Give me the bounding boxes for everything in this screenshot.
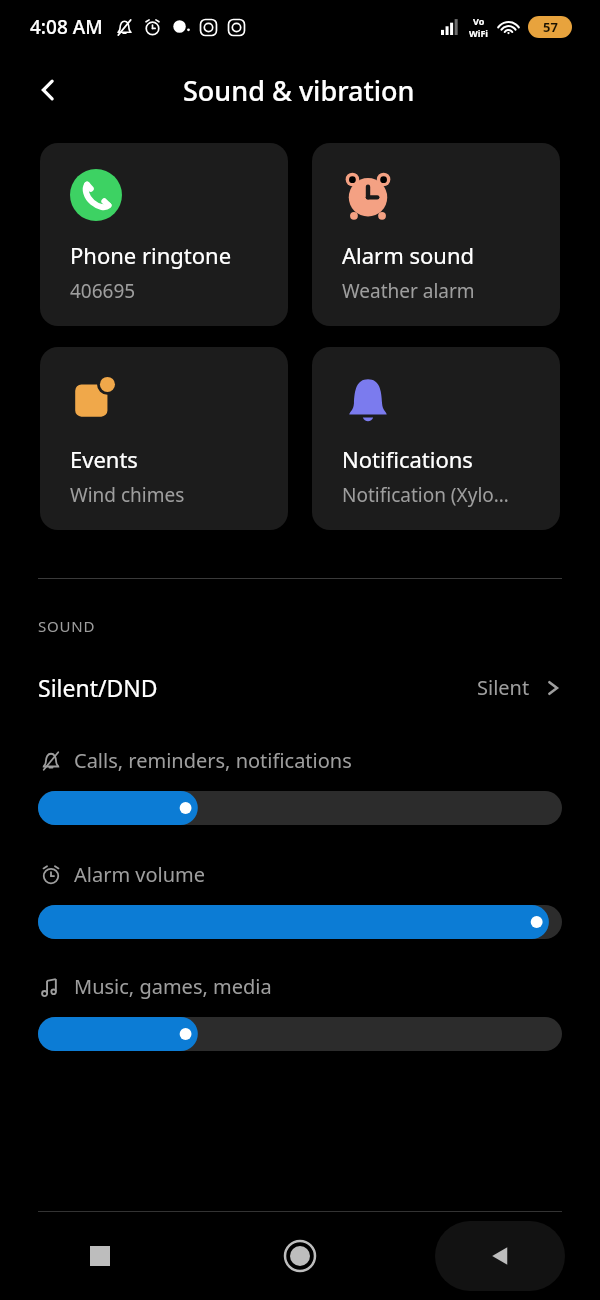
- staticText: Silent/DND: [38, 672, 158, 703]
- staticText: 57: [543, 18, 558, 36]
- button[interactable]: Events: [40, 347, 288, 530]
- staticText: SOUND: [38, 616, 96, 636]
- staticText: Alarm sound: [342, 240, 475, 270]
- button[interactable]: Back: [435, 1221, 565, 1291]
- button[interactable]: Notifications: [312, 347, 560, 530]
- button[interactable]: Silent/DND: [0, 666, 600, 709]
- button[interactable]: Alarm volume: [0, 861, 600, 940]
- staticText: Vo: [473, 15, 485, 27]
- button[interactable]: Music, games, media: [0, 973, 600, 1052]
- button[interactable]: Home: [267, 1223, 333, 1289]
- staticText: Wind chimes: [70, 482, 185, 508]
- staticText: Music, games, media: [74, 973, 272, 1000]
- staticText: Sound & vibration: [183, 72, 415, 109]
- staticText: Silent: [477, 674, 530, 701]
- button[interactable]: Alarm sound: [312, 143, 560, 326]
- button[interactable]: Phone ringtone: [40, 143, 288, 326]
- staticText: Notifications: [342, 444, 473, 474]
- staticText: Notification (Xylo…: [342, 482, 509, 508]
- button[interactable]: Calls, reminders, notifications: [0, 747, 600, 826]
- staticText: Alarm volume: [74, 861, 206, 888]
- button[interactable]: Back: [22, 64, 74, 116]
- button[interactable]: Recents: [67, 1223, 133, 1289]
- staticText: Calls, reminders, notifications: [74, 747, 352, 774]
- staticText: Weather alarm: [342, 278, 475, 304]
- staticText: Events: [70, 444, 138, 474]
- staticText: WiFi: [469, 27, 489, 39]
- staticText: Phone ringtone: [70, 240, 232, 270]
- staticText: 4:08 AM: [30, 14, 103, 40]
- staticText: 406695: [70, 278, 136, 304]
